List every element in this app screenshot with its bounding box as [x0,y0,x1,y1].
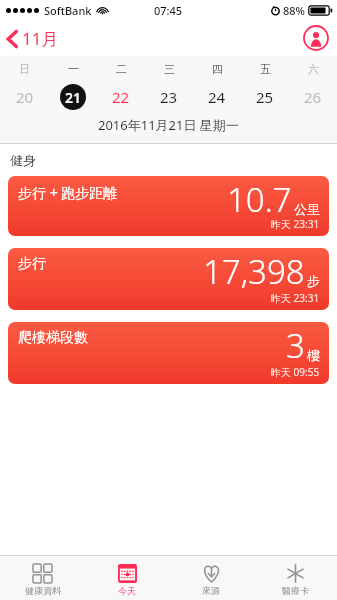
staticText: 醫療卡 [282,585,309,596]
button[interactable]: 今天 [85,556,169,600]
staticText: SoftBank [44,3,92,18]
staticText: 20 [16,87,34,107]
staticText: 3 [286,323,305,368]
button[interactable]: 26 [289,82,337,112]
staticText: 步行 [18,255,46,273]
button[interactable]: 23 [145,82,193,112]
staticText: 日 [19,62,30,76]
staticText: 22 [112,87,130,107]
button[interactable]: 20 [0,82,49,112]
button[interactable]: 22 [97,82,145,112]
staticText: 六 [308,62,319,76]
staticText: 昨天 23:31 [271,291,320,305]
staticText: 二 [116,62,127,76]
button[interactable]: 醫療卡 [253,556,337,600]
button[interactable]: 24 [193,82,241,112]
staticText: 樓 [307,347,320,363]
staticText: 爬樓梯段數 [18,329,88,347]
staticText: 10.7 [227,177,292,222]
staticText: 步行 + 跑步距離 [18,183,118,202]
button[interactable]: 25 [241,82,289,112]
staticText: 2016年11月21日 星期一 [98,116,239,134]
button[interactable]: 21 [49,82,97,112]
staticText: 昨天 09:55 [271,365,320,379]
staticText: 23 [160,87,178,107]
button[interactable]: 步行 [8,248,329,310]
button[interactable]: 健康資料 [0,556,85,600]
staticText: 21 [65,88,82,107]
staticText: 健身 [10,152,36,168]
staticText: 17,398 [203,249,305,294]
staticText: 26 [304,87,322,107]
staticText: 88% [283,3,305,18]
staticText: 四 [212,62,223,76]
staticText: 11月 [22,27,59,50]
button[interactable]: 步行 + 跑步距離 [8,176,329,236]
staticText: 五 [260,62,271,76]
staticText: 07:45 [154,3,183,18]
staticText: 24 [208,87,226,107]
staticText: 今天 [118,585,136,596]
button[interactable]: 11月 [0,23,67,54]
button[interactable]: 爬樓梯段數 [8,322,329,384]
staticText: 一 [68,62,79,76]
button[interactable]: Profile [303,25,329,51]
staticText: 公里 [294,201,320,217]
staticText: 25 [256,87,274,107]
staticText: 昨天 23:31 [271,217,320,231]
staticText: 來源 [202,585,220,596]
staticText: 健康資料 [25,585,61,596]
staticText: 三 [164,62,175,76]
button[interactable]: 來源 [169,556,253,600]
staticText: 步 [307,273,320,289]
